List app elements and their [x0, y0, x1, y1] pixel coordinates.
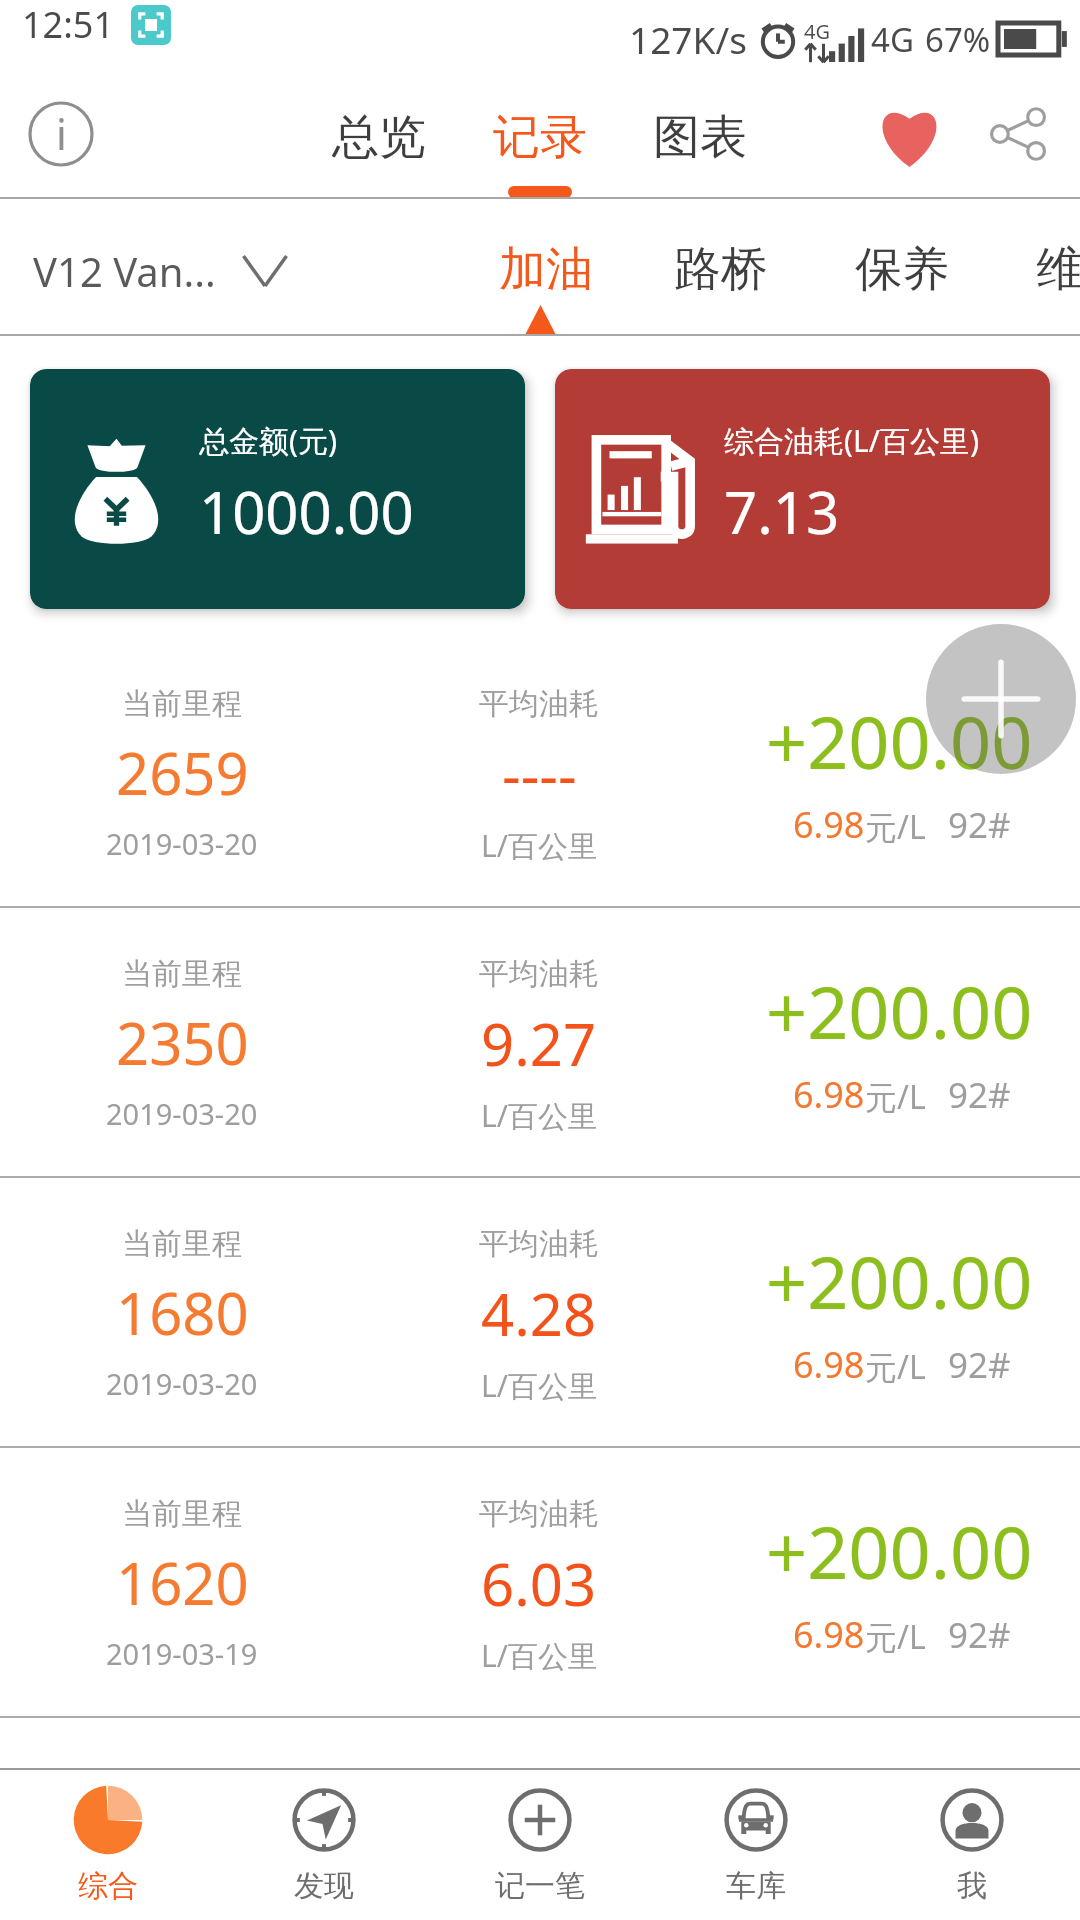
staticText: 6.98 — [793, 1610, 865, 1659]
staticText: 记录 — [493, 108, 587, 167]
button[interactable]: Favorite — [849, 76, 969, 195]
staticText: 维 — [1036, 240, 1080, 299]
staticText: 平均油耗 — [479, 955, 599, 993]
staticText: 1620 — [116, 1543, 249, 1622]
staticText: L/百公里 — [481, 825, 598, 866]
staticText: L/百公里 — [481, 1095, 598, 1136]
button[interactable]: 路桥 — [663, 202, 779, 337]
staticText: +200.00 — [766, 1502, 1033, 1600]
staticText: 元/L — [865, 1615, 926, 1659]
button[interactable]: 维 — [1001, 202, 1080, 337]
staticText: 总览 — [332, 108, 426, 167]
staticText: 6.98 — [793, 1340, 865, 1389]
staticText: 综合油耗(L/百公里) — [724, 420, 979, 461]
button[interactable]: 记录 — [482, 78, 598, 197]
staticText: 当前里程 — [122, 1225, 242, 1263]
staticText: 平均油耗 — [479, 1495, 599, 1533]
staticText: i — [56, 105, 67, 162]
staticText: 6.98 — [793, 1070, 865, 1119]
staticText: ---- — [502, 734, 577, 813]
staticText: 2019-03-20 — [106, 1094, 258, 1133]
staticText: 4.28 — [481, 1274, 597, 1353]
staticText: 平均油耗 — [479, 1225, 599, 1263]
button[interactable]: 当前里程 — [0, 638, 1080, 906]
button[interactable]: Info — [6, 74, 116, 193]
button[interactable]: 图表 — [642, 78, 758, 197]
staticText: 12:51 — [22, 0, 115, 49]
staticText: 92# — [948, 801, 1011, 849]
staticText: 1000.00 — [199, 472, 414, 551]
button[interactable]: 我 — [864, 1770, 1080, 1920]
button[interactable]: 保养 — [844, 202, 960, 337]
button[interactable]: Share — [958, 74, 1078, 193]
staticText: L/百公里 — [481, 1635, 598, 1676]
staticText: +200.00 — [766, 692, 1033, 790]
staticText: 元/L — [865, 1345, 926, 1389]
staticText: 图表 — [653, 108, 747, 167]
staticText: 127K/s — [629, 14, 747, 64]
staticText: 元/L — [865, 1075, 926, 1119]
button[interactable]: 当前里程 — [0, 908, 1080, 1176]
staticText: 综合 — [78, 1867, 138, 1905]
staticText: 9.27 — [481, 1004, 597, 1083]
staticText: +200.00 — [766, 962, 1033, 1060]
staticText: 2019-03-20 — [106, 824, 258, 863]
button[interactable]: 记一笔 — [432, 1770, 648, 1920]
button[interactable]: Add record — [926, 624, 1076, 774]
button[interactable]: 综合油耗(L/百公里) — [555, 369, 1050, 609]
staticText: 6.98 — [793, 800, 865, 849]
staticText: 当前里程 — [122, 685, 242, 723]
staticText: 路桥 — [674, 240, 768, 299]
staticText: 2019-03-20 — [106, 1364, 258, 1403]
staticText: 发现 — [294, 1867, 354, 1905]
staticText: 4G — [804, 18, 830, 45]
staticText: 67% — [925, 17, 991, 62]
button[interactable]: 加油 — [488, 202, 604, 337]
staticText: 92# — [948, 1341, 1011, 1389]
staticText: 2350 — [116, 1003, 249, 1082]
staticText: 2659 — [116, 733, 249, 812]
button[interactable]: 综合 — [0, 1770, 216, 1920]
button[interactable]: 当前里程 — [0, 1178, 1080, 1446]
button[interactable]: V12 Van... — [33, 203, 288, 338]
staticText: 2019-03-19 — [106, 1634, 258, 1673]
staticText: V12 Van... — [33, 244, 216, 298]
staticText: 保养 — [855, 240, 949, 299]
button[interactable]: 当前里程 — [0, 1448, 1080, 1716]
staticText: 当前里程 — [122, 955, 242, 993]
staticText: 4G — [871, 17, 914, 62]
button[interactable]: 总览 — [321, 78, 437, 197]
staticText: 1680 — [116, 1273, 249, 1352]
staticText: 记一笔 — [495, 1867, 585, 1905]
staticText: +200.00 — [766, 1232, 1033, 1330]
staticText: 平均油耗 — [479, 685, 599, 723]
button[interactable]: 发现 — [216, 1770, 432, 1920]
button[interactable]: 车库 — [648, 1770, 864, 1920]
staticText: 6.03 — [481, 1544, 597, 1623]
button[interactable]: 总金额(元) — [30, 369, 525, 609]
staticText: 加油 — [499, 240, 593, 299]
staticText: 总金额(元) — [199, 420, 337, 461]
staticText: 92# — [948, 1071, 1011, 1119]
staticText: 元/L — [865, 805, 926, 849]
staticText: 我 — [957, 1867, 987, 1905]
staticText: 车库 — [726, 1867, 786, 1905]
staticText: 7.13 — [724, 472, 840, 551]
staticText: 当前里程 — [122, 1495, 242, 1533]
staticText: 92# — [948, 1611, 1011, 1659]
staticText: L/百公里 — [481, 1365, 598, 1406]
